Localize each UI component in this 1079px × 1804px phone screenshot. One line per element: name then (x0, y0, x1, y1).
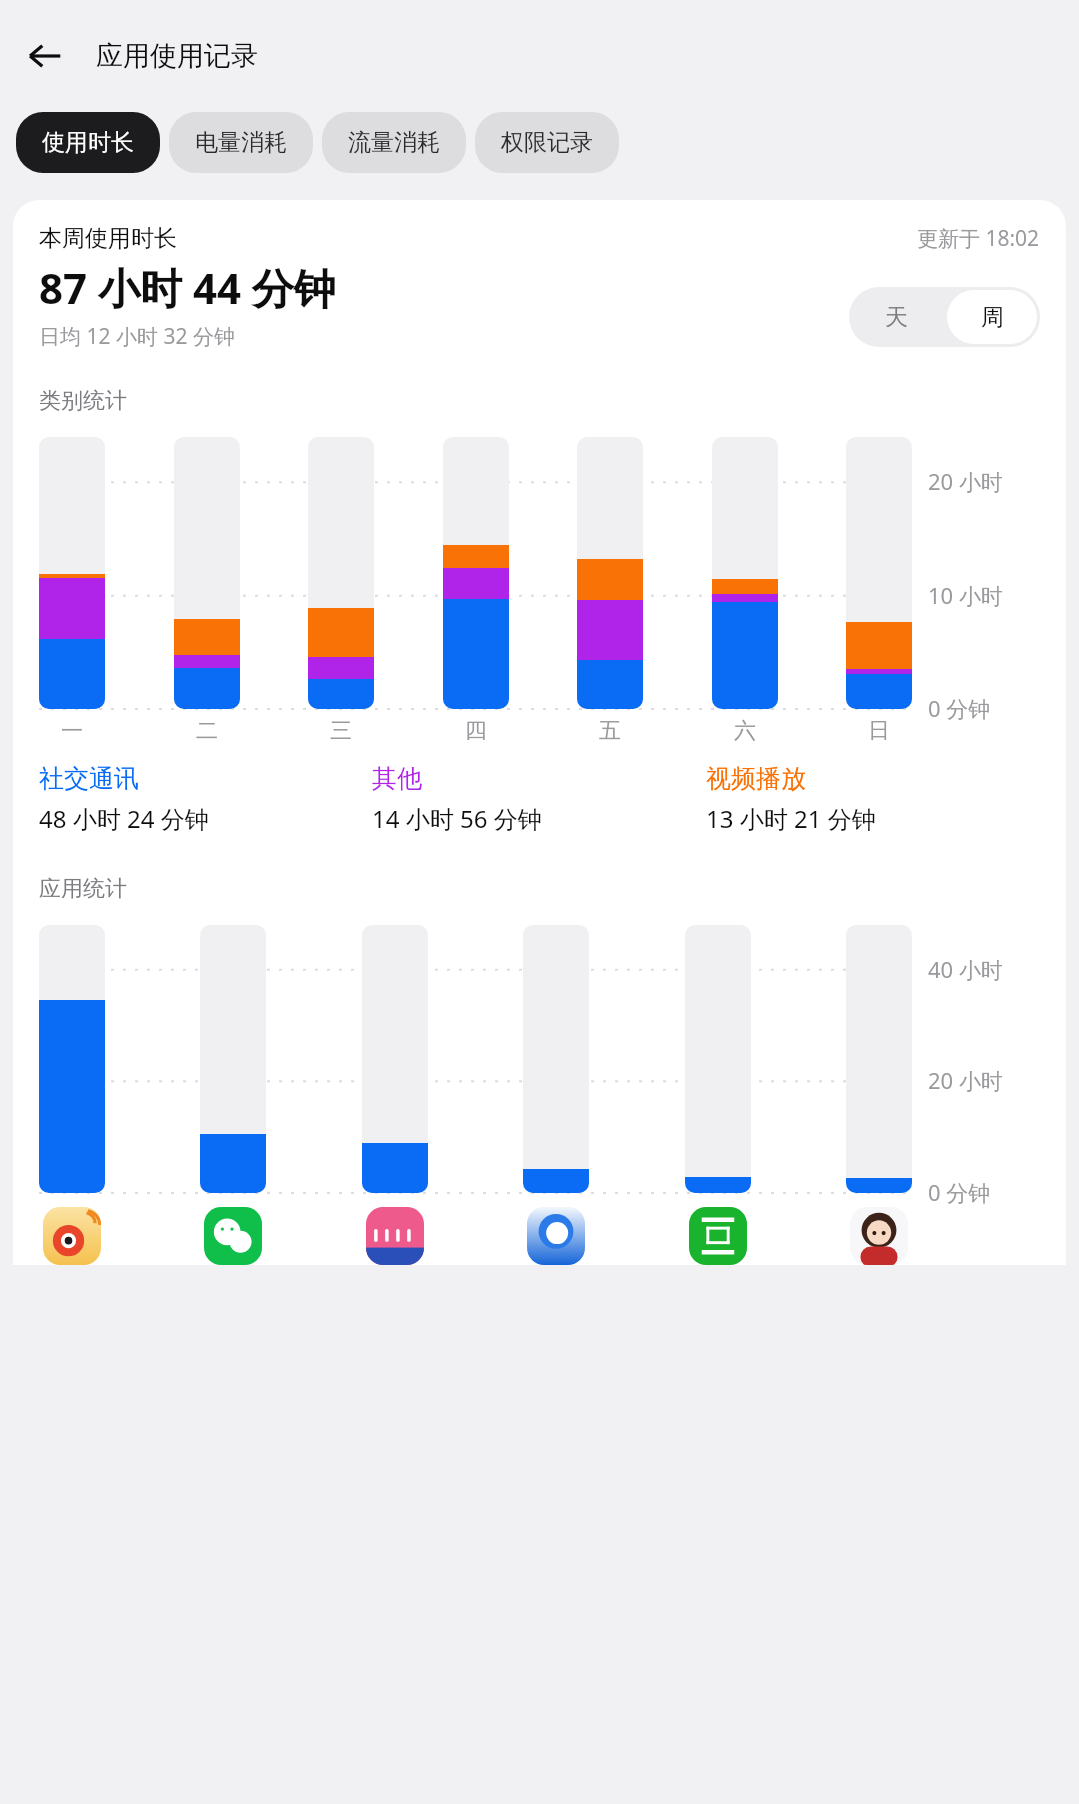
button[interactable]: 权限记录 (475, 112, 619, 173)
staticText: 类别统计 (39, 387, 127, 415)
button[interactable]: 使用时长 (16, 112, 160, 173)
button[interactable]: Back (16, 27, 74, 85)
staticText: 应用统计 (39, 875, 127, 903)
staticText: 14 小时 56 分钟 (372, 802, 542, 835)
button[interactable]: 社交通讯 (39, 763, 372, 835)
button[interactable]: App 2 (366, 1207, 424, 1265)
staticText: 20 小时 (928, 466, 1003, 496)
button[interactable]: 电量消耗 (169, 112, 313, 173)
staticText: 0 分钟 (928, 1177, 991, 1207)
staticText: 日 (868, 717, 890, 745)
staticText: 天 (885, 303, 908, 332)
staticText: 87 小时 44 分钟 (39, 259, 336, 316)
staticText: 48 小时 24 分钟 (39, 802, 209, 835)
staticText: 二 (196, 717, 218, 745)
staticText: 使用时长 (42, 128, 134, 157)
staticText: 本周使用时长 (39, 224, 177, 253)
button[interactable]: 流量消耗 (322, 112, 466, 173)
staticText: 周 (981, 303, 1004, 332)
staticText: 日均 12 小时 32 分钟 (39, 322, 235, 351)
button[interactable]: 视频播放 (706, 763, 1040, 835)
staticText: 10 小时 (928, 580, 1003, 610)
button[interactable]: 周 (947, 290, 1037, 344)
staticText: 应用使用记录 (96, 39, 258, 73)
button[interactable]: App 3 (527, 1207, 585, 1265)
button[interactable]: App 1 (204, 1207, 262, 1265)
button[interactable]: App 4 (689, 1207, 747, 1265)
button[interactable]: App 5 (850, 1207, 908, 1265)
staticText: 0 分钟 (928, 693, 991, 723)
button[interactable]: 其他 (372, 763, 706, 835)
staticText: 视频播放 (706, 763, 806, 794)
staticText: 四 (465, 717, 487, 745)
button[interactable]: App 0 (43, 1207, 101, 1265)
staticText: 六 (734, 717, 756, 745)
staticText: 一 (61, 717, 83, 745)
staticText: 电量消耗 (195, 128, 287, 157)
staticText: 三 (330, 717, 352, 745)
staticText: 20 小时 (928, 1065, 1003, 1095)
staticText: 其他 (372, 763, 422, 794)
button[interactable]: 天 (849, 287, 944, 347)
staticText: 权限记录 (501, 128, 593, 157)
staticText: 五 (599, 717, 621, 745)
staticText: 更新于 18:02 (917, 224, 1040, 253)
staticText: 40 小时 (928, 954, 1003, 984)
staticText: 社交通讯 (39, 763, 139, 794)
staticText: 13 小时 21 分钟 (706, 802, 876, 835)
staticText: 流量消耗 (348, 128, 440, 157)
